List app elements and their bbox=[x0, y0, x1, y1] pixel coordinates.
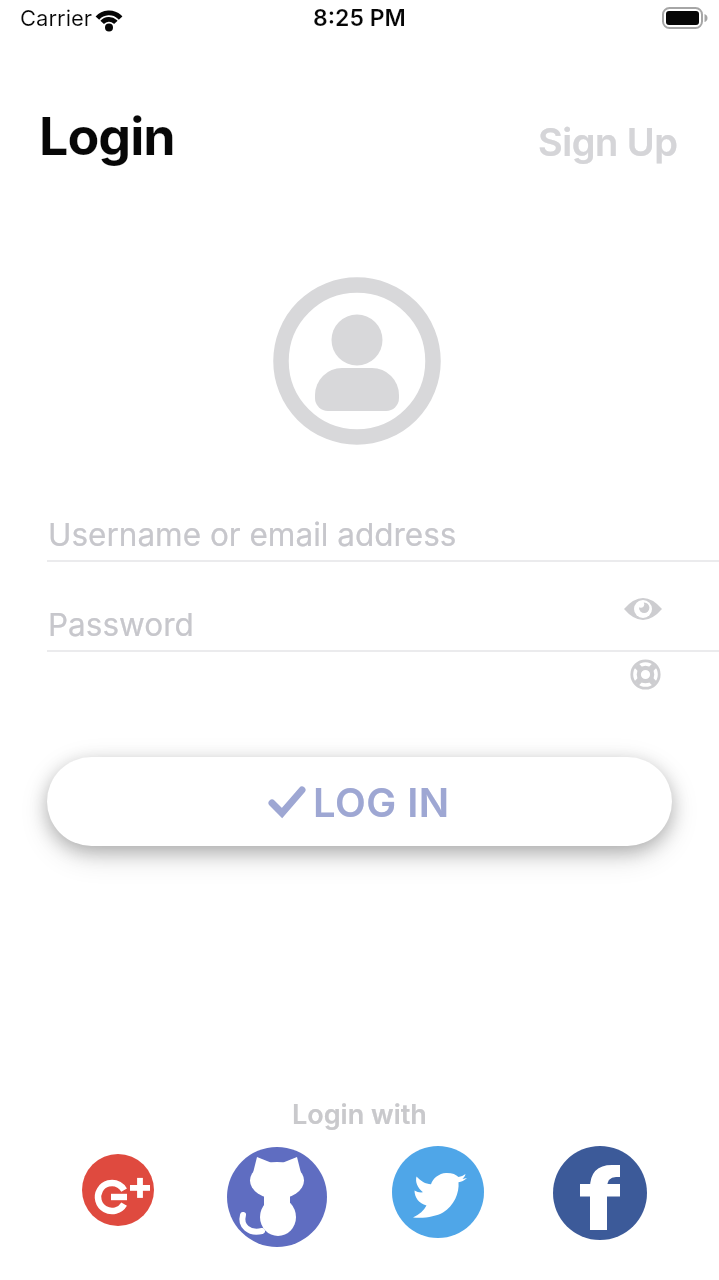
button[interactable] bbox=[553, 1146, 647, 1240]
staticText: LOG IN bbox=[313, 778, 450, 826]
staticText: Login bbox=[39, 105, 175, 168]
staticText: Username or email address bbox=[48, 515, 457, 553]
button[interactable] bbox=[392, 1146, 484, 1238]
staticText: Carrier bbox=[20, 5, 93, 32]
button[interactable] bbox=[630, 659, 661, 690]
staticText: Sign Up bbox=[538, 119, 678, 165]
button[interactable]: Password bbox=[47, 595, 672, 651]
button[interactable] bbox=[82, 1154, 154, 1226]
staticText: Login with bbox=[292, 1098, 427, 1131]
button[interactable]: LOG IN bbox=[47, 757, 672, 846]
button[interactable]: Sign Up bbox=[538, 119, 678, 165]
button[interactable]: Username or email address bbox=[47, 505, 672, 561]
staticText: 8:25 PM bbox=[313, 4, 406, 32]
button[interactable] bbox=[227, 1147, 327, 1247]
button[interactable] bbox=[620, 593, 666, 627]
staticText: Password bbox=[48, 605, 194, 643]
